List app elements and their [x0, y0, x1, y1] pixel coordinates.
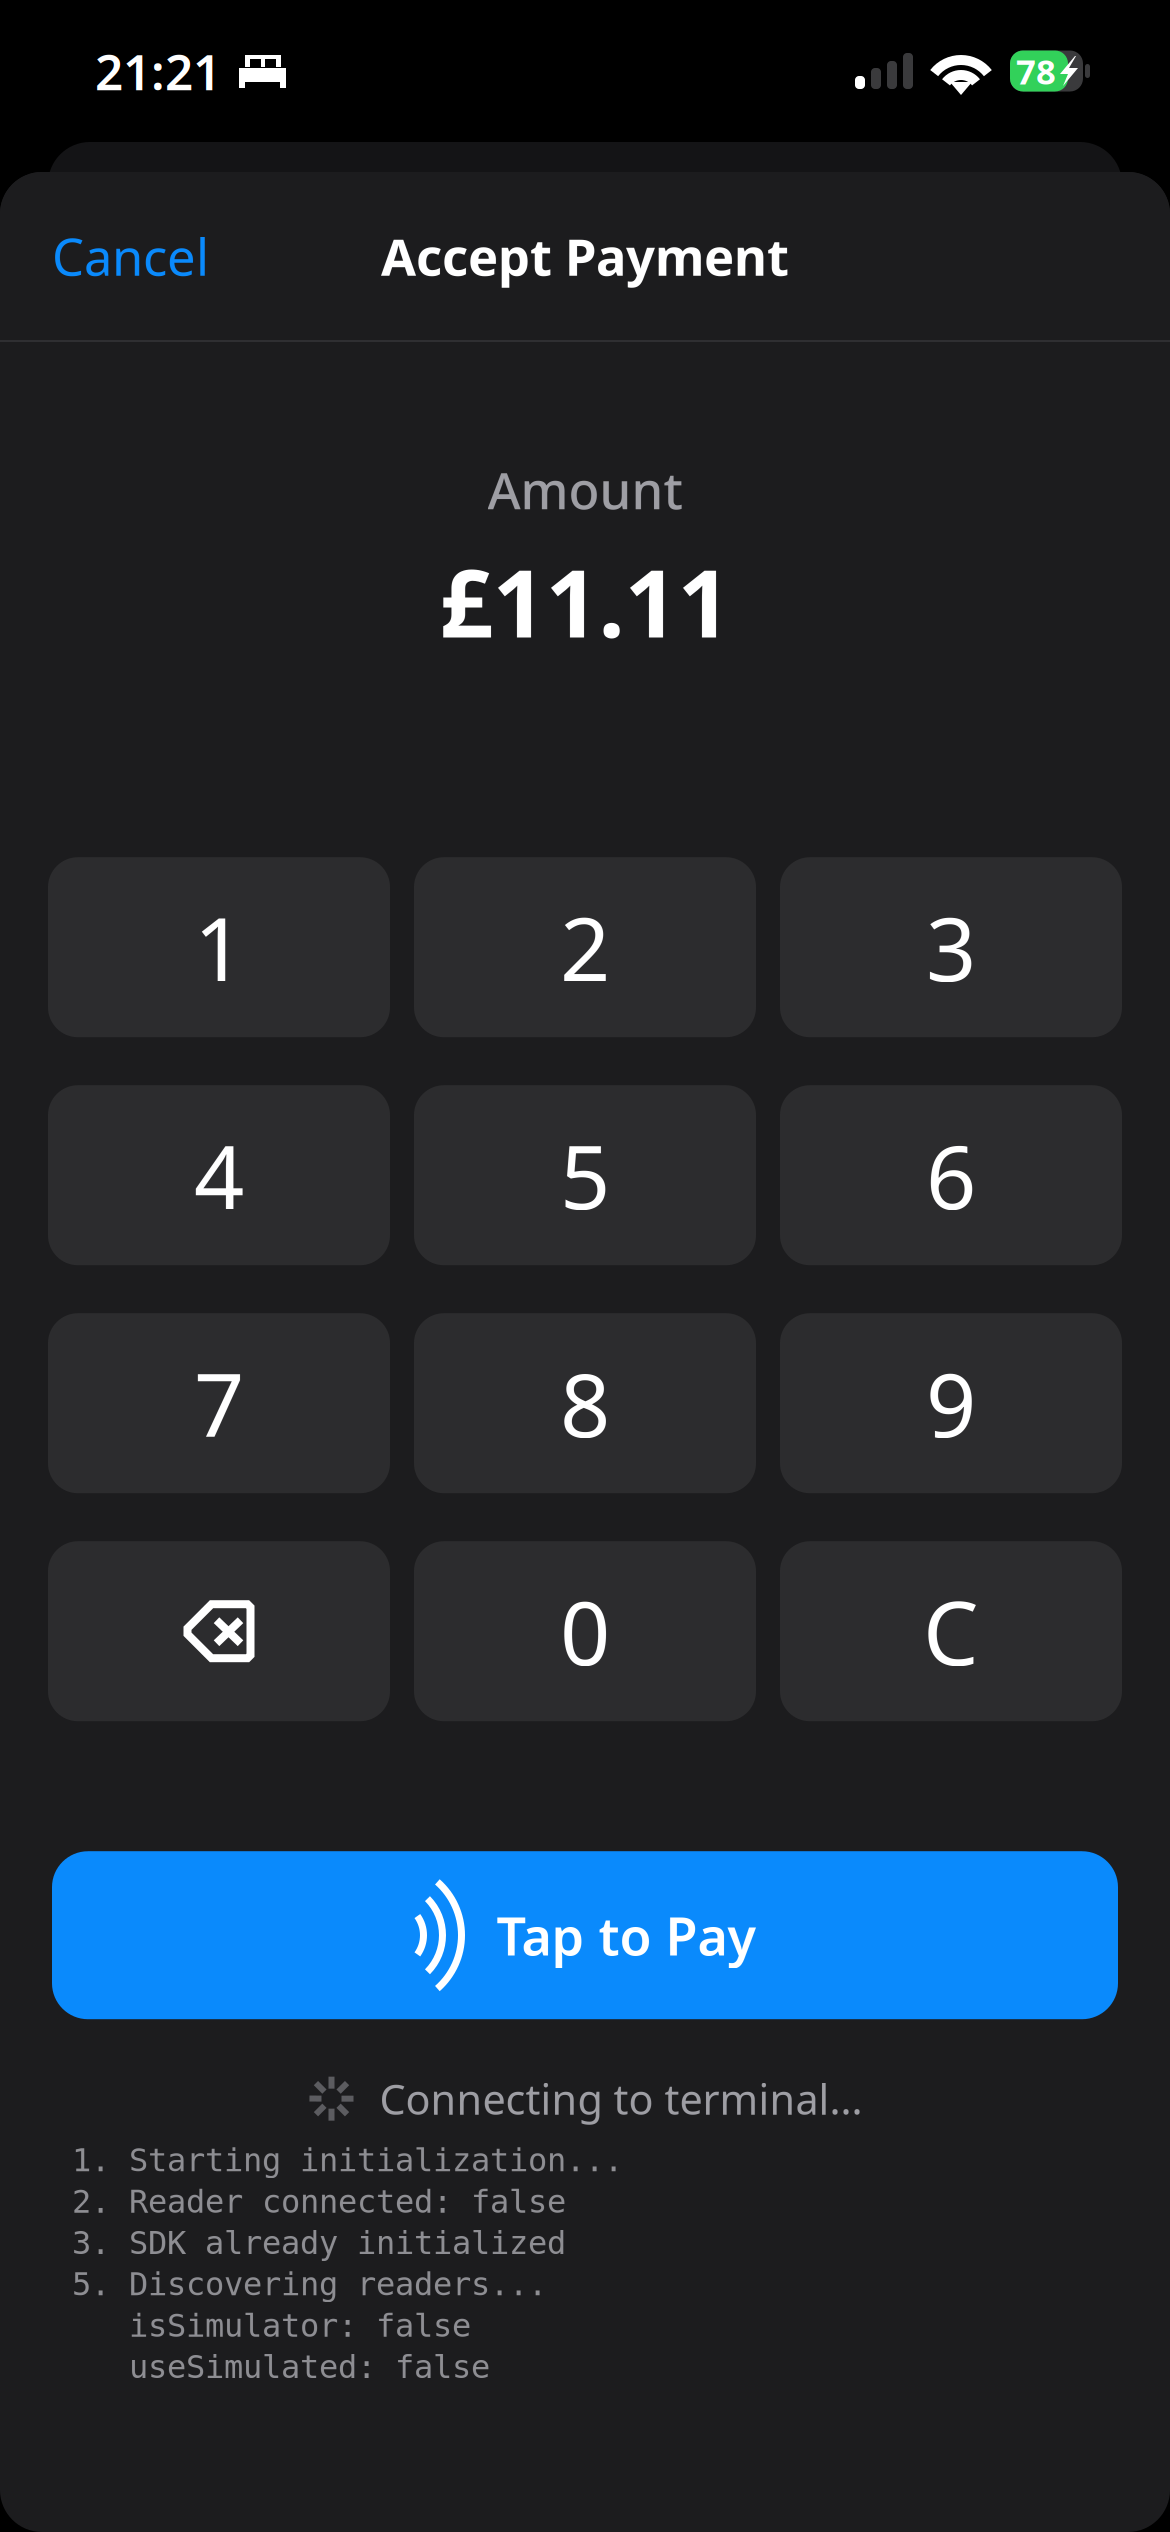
- button[interactable]: 6: [780, 1085, 1122, 1265]
- staticText: Cancel: [52, 222, 209, 290]
- staticText: C: [923, 1573, 979, 1690]
- staticText: 3. SDK already initialized: [72, 2225, 566, 2261]
- button[interactable]: Cancel: [0, 202, 209, 310]
- button[interactable]: 5: [414, 1085, 756, 1265]
- staticText: 2. Reader connected: false: [72, 2183, 566, 2220]
- staticText: 5. Discovering readers...: [72, 2266, 547, 2302]
- staticText: 2: [560, 889, 610, 1006]
- staticText: Amount: [487, 456, 682, 523]
- button[interactable]: 4: [48, 1085, 390, 1265]
- staticText: useSimulated: false: [72, 2349, 490, 2385]
- button[interactable]: 9: [780, 1313, 1122, 1493]
- staticText: £11.11: [439, 539, 730, 663]
- button[interactable]: 2: [414, 857, 756, 1037]
- staticText: Accept Payment: [381, 222, 789, 290]
- button[interactable]: 7: [48, 1313, 390, 1493]
- staticText: 78: [1016, 48, 1056, 94]
- staticText: 7: [194, 1345, 244, 1462]
- button[interactable]: Delete: [48, 1541, 390, 1721]
- staticText: 5: [560, 1117, 610, 1234]
- staticText: 8: [560, 1345, 610, 1462]
- staticText: 1. Starting initialization...: [72, 2142, 623, 2178]
- staticText: Connecting to terminal...: [379, 2071, 862, 2126]
- button[interactable]: 1: [48, 857, 390, 1037]
- button[interactable]: C: [780, 1541, 1122, 1721]
- staticText: 4: [194, 1117, 244, 1234]
- staticText: isSimulator: false: [72, 2307, 471, 2344]
- staticText: 9: [926, 1345, 976, 1462]
- button[interactable]: 8: [414, 1313, 756, 1493]
- staticText: 21:21: [95, 38, 221, 104]
- button[interactable]: Tap to Pay: [0, 1851, 1170, 2019]
- staticText: 3: [926, 889, 976, 1006]
- button[interactable]: 3: [780, 857, 1122, 1037]
- staticText: 1: [194, 889, 244, 1006]
- staticText: Tap to Pay: [496, 1901, 755, 1970]
- staticText: 6: [926, 1117, 976, 1234]
- button[interactable]: 0: [414, 1541, 756, 1721]
- staticText: 0: [560, 1573, 610, 1690]
